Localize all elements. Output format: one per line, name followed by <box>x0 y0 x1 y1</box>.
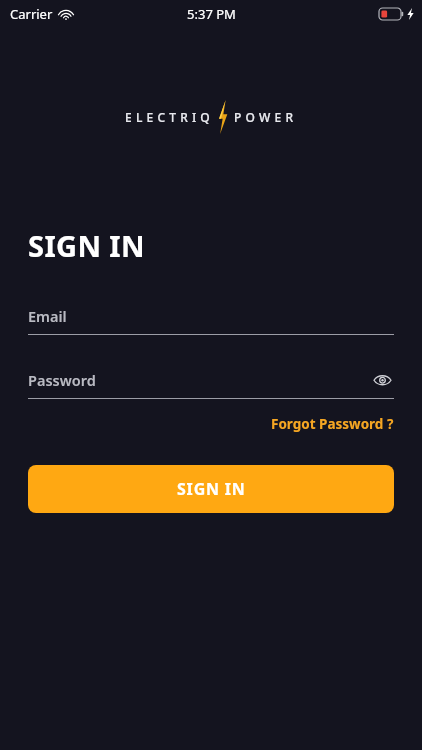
staticText: Email <box>28 306 67 326</box>
button[interactable]: Forgot Password ? <box>243 411 422 437</box>
staticText: SIGN IN <box>177 478 246 500</box>
staticText: ELECTRIQ <box>125 109 214 125</box>
staticText: Password <box>28 370 96 390</box>
staticText: POWER <box>234 109 298 125</box>
button[interactable]: Email <box>28 303 394 329</box>
staticText: Carrier <box>10 5 53 23</box>
staticText: 5:37 PM <box>187 5 236 23</box>
staticText: Forgot Password ? <box>271 415 394 433</box>
button[interactable]: SIGN IN <box>28 465 394 513</box>
staticText: SIGN IN <box>28 226 146 265</box>
button[interactable]: Password <box>28 367 394 393</box>
button[interactable]: Show password <box>370 368 394 392</box>
